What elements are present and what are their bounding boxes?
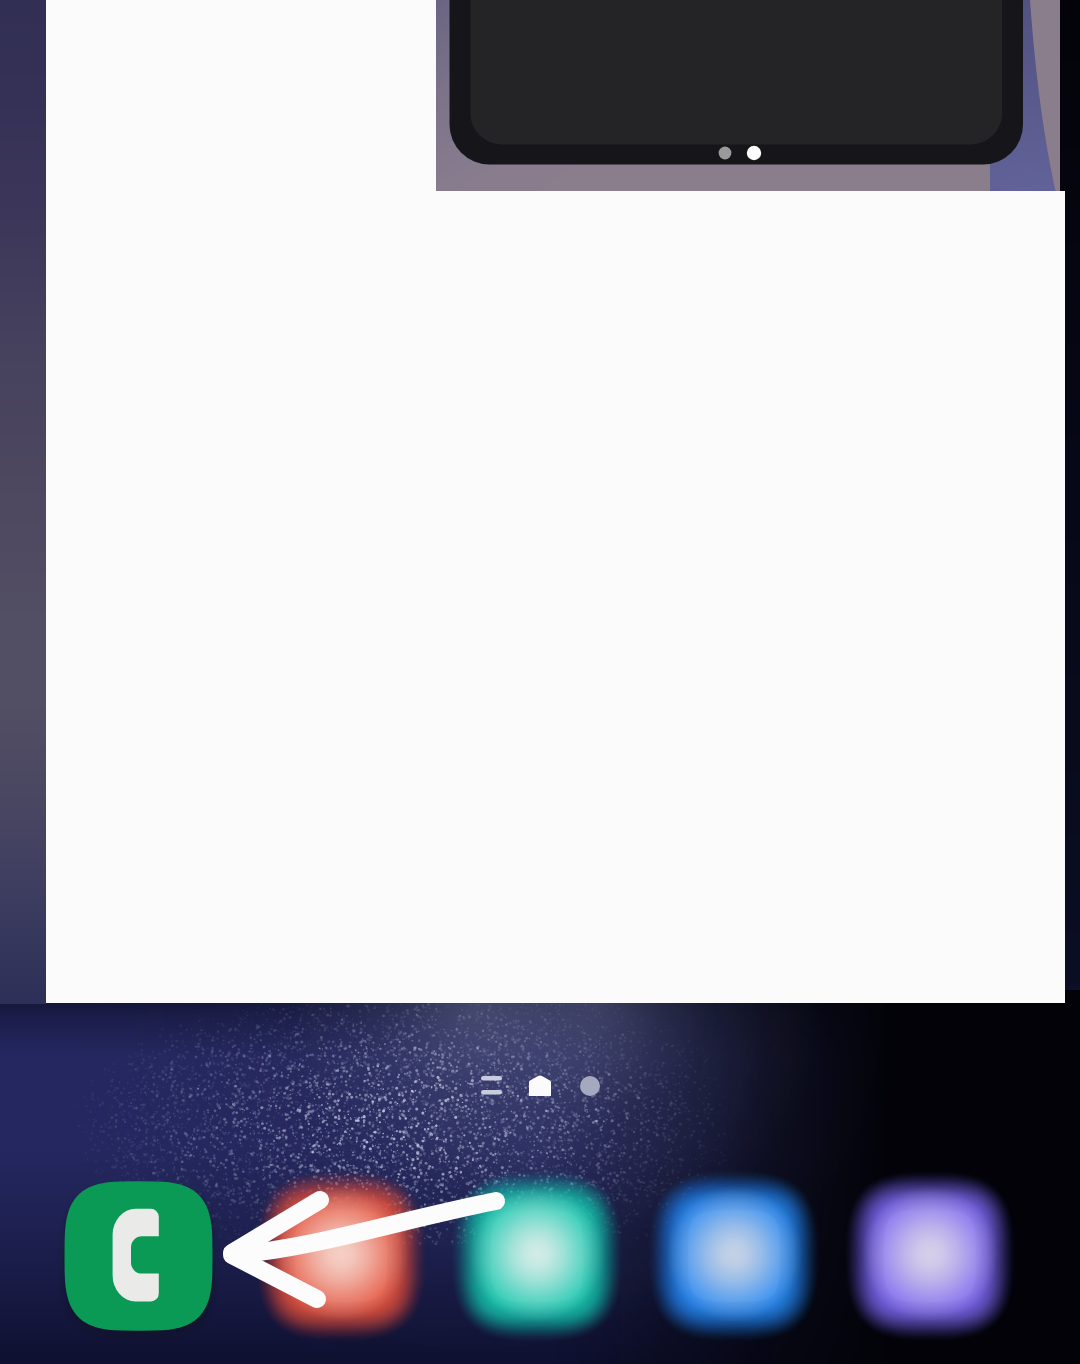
button[interactable]: Internet (653, 1180, 805, 1332)
button[interactable]: Contacts (261, 1180, 413, 1332)
button[interactable]: Messages (457, 1180, 609, 1332)
button[interactable]: Home (512, 1056, 568, 1114)
button[interactable]: Home screen widget (450, 0, 1023, 165)
button[interactable]: Recent apps (462, 1056, 520, 1114)
button[interactable]: Back (562, 1056, 619, 1114)
button[interactable]: Gallery (849, 1180, 1001, 1332)
button[interactable]: Phone (63, 1180, 215, 1332)
